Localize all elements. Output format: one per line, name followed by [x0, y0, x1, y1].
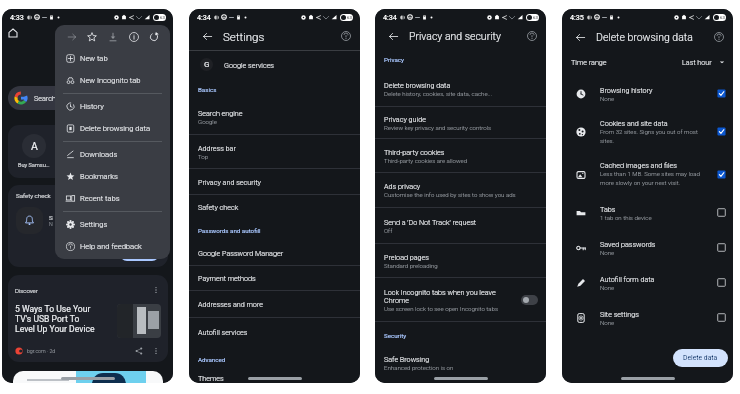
staticText: From 32 sites. Signs you out of most sit…: [600, 128, 707, 145]
button[interactable]: Cached images and files: [715, 168, 728, 181]
button[interactable]: Saved passwords: [562, 230, 733, 265]
button[interactable]: Browsing history: [562, 77, 733, 110]
button[interactable]: Safe Browsing: [375, 348, 546, 378]
staticText: Ads privacy: [384, 182, 421, 190]
button[interactable]: [521, 295, 538, 305]
staticText: Lock Incognito tabs when you leave: [384, 288, 496, 296]
button[interactable]: Share: [134, 346, 144, 356]
button[interactable]: Tabs: [562, 195, 733, 230]
button[interactable]: Address bar: [189, 135, 360, 169]
staticText: Third-party cookies: [384, 148, 445, 156]
staticText: Discover: [15, 287, 38, 294]
staticText: Delete browsing data: [596, 31, 693, 43]
staticText: Delete browsing data: [80, 124, 151, 133]
button[interactable]: History: [55, 95, 170, 117]
button[interactable]: Downloads: [55, 143, 170, 165]
staticText: 4:33: [10, 13, 24, 21]
button[interactable]: Download: [105, 29, 120, 44]
staticText: Security: [384, 332, 407, 339]
button[interactable]: Payment methods: [189, 266, 360, 291]
button[interactable]: Settings: [55, 213, 170, 235]
staticText: Settings: [223, 30, 265, 43]
button[interactable]: Help: [711, 29, 727, 45]
staticText: Saved passwords: [600, 240, 656, 248]
button[interactable]: Help: [338, 28, 354, 44]
button[interactable]: Google Password Manager: [189, 241, 360, 266]
button[interactable]: Back: [384, 27, 402, 45]
staticText: Themes: [198, 374, 224, 382]
button[interactable]: Cookies and site data: [715, 125, 728, 138]
button[interactable]: Bookmarks: [55, 165, 170, 187]
staticText: 63: [533, 15, 538, 20]
button[interactable]: Page info: [126, 29, 141, 44]
button[interactable]: Reload: [146, 29, 161, 44]
button[interactable]: Themes: [189, 373, 360, 383]
button[interactable]: Site settings: [715, 311, 728, 324]
staticText: Google services: [224, 61, 275, 69]
staticText: None: [600, 284, 615, 291]
staticText: Recent tabs: [80, 194, 120, 203]
button[interactable]: More options: [151, 346, 161, 356]
button[interactable]: Cookies and site data: [562, 110, 733, 153]
button[interactable]: Autofill services: [189, 318, 360, 345]
button[interactable]: Help: [524, 28, 540, 44]
button[interactable]: Safety check: [189, 195, 360, 219]
button[interactable]: Preload pages: [375, 244, 546, 278]
staticText: 4:34: [197, 13, 211, 21]
button[interactable]: Back: [571, 28, 589, 46]
staticText: 63: [720, 15, 725, 20]
staticText: Time range: [571, 58, 607, 66]
button[interactable]: Saved passwords: [715, 241, 728, 254]
staticText: A: [31, 140, 38, 152]
staticText: Passwords and autofill: [198, 227, 261, 234]
staticText: Less than 1 MB. Some sites may load more…: [600, 170, 707, 187]
staticText: Autofill form data: [600, 275, 655, 283]
button[interactable]: Delete browsing data: [375, 71, 546, 107]
button[interactable]: Send a 'Do Not Track' request: [375, 208, 546, 244]
button[interactable]: Ads privacy: [375, 173, 546, 208]
staticText: G: [204, 60, 210, 69]
button[interactable]: Addresses and more: [189, 291, 360, 318]
button[interactable]: Site settings: [562, 300, 733, 335]
button[interactable]: Autofill form data: [715, 276, 728, 289]
button[interactable]: G: [189, 51, 360, 78]
staticText: Review key privacy and security controls: [384, 124, 492, 131]
button[interactable]: New Incognito tab: [55, 69, 170, 91]
staticText: Downloads: [80, 150, 118, 159]
button[interactable]: [120, 247, 159, 261]
button[interactable]: Delete browsing data: [55, 117, 170, 139]
staticText: Buy Samsu...: [18, 162, 50, 169]
staticText: 63: [160, 15, 165, 20]
staticText: None: [600, 249, 615, 256]
staticText: Autofill services: [198, 328, 248, 336]
button[interactable]: Lock Incognito tabs when you leave: [375, 278, 546, 322]
button[interactable]: Privacy and security: [189, 169, 360, 195]
button[interactable]: Cached images and files: [562, 153, 733, 195]
staticText: 63: [347, 15, 352, 20]
button[interactable]: Delete data: [673, 349, 728, 367]
button[interactable]: Home: [5, 25, 21, 41]
staticText: Settings: [80, 220, 108, 229]
button[interactable]: Time range: [562, 54, 733, 70]
staticText: New Incognito tab: [80, 76, 141, 85]
staticText: Privacy and security: [409, 30, 501, 42]
staticText: Safety check: [198, 203, 239, 211]
button[interactable]: Search engine: [189, 100, 360, 135]
staticText: Top: [198, 153, 209, 160]
button[interactable]: Forward: [64, 29, 79, 44]
button[interactable]: Recent tabs: [55, 187, 170, 209]
button[interactable]: Bookmark: [84, 29, 99, 44]
button[interactable]: Help and feedback: [55, 235, 170, 257]
button[interactable]: Search or type URL: [8, 86, 130, 110]
button[interactable]: Autofill form data: [562, 265, 733, 300]
button[interactable]: Browsing history: [715, 87, 728, 100]
staticText: Addresses and more: [198, 300, 263, 308]
button[interactable]: Discover options: [151, 285, 161, 295]
button[interactable]: Privacy guide: [375, 107, 546, 139]
button[interactable]: New tab: [55, 47, 170, 69]
button[interactable]: Back: [198, 27, 216, 45]
staticText: Enhanced protection is on: [384, 364, 454, 371]
staticText: Privacy and security: [198, 178, 261, 186]
button[interactable]: Tabs: [715, 206, 728, 219]
button[interactable]: Third-party cookies: [375, 139, 546, 173]
